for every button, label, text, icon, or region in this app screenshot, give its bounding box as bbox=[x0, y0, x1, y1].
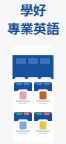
staticText: 專業英語 bbox=[7, 18, 59, 38]
staticText: 學好 bbox=[20, 0, 46, 19]
